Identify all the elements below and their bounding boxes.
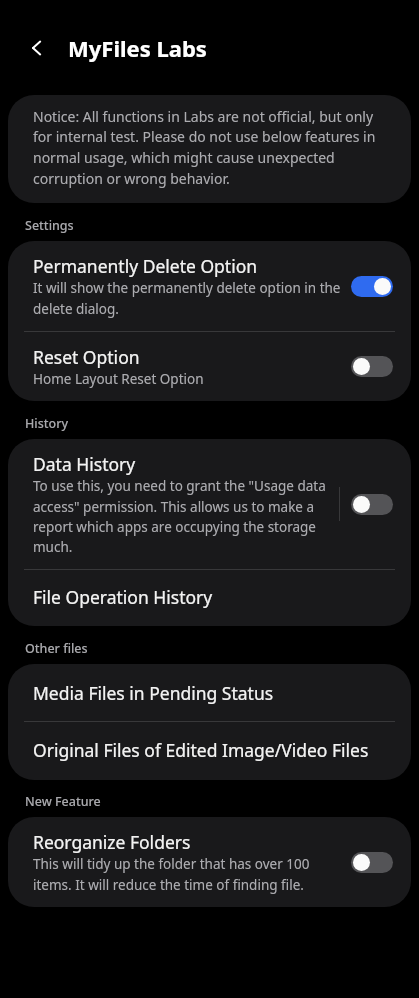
button[interactable]: Reset Option: [349, 354, 395, 379]
staticText: Home Layout Reset Option: [33, 370, 341, 388]
staticText: Permanently Delete Option: [33, 254, 258, 278]
staticText: Media Files in Pending Status: [33, 681, 274, 705]
button[interactable]: Reorganize Folders: [8, 817, 411, 907]
button[interactable]: Permanently Delete Option: [8, 241, 411, 331]
staticText: It will show the permanently delete opti…: [33, 279, 341, 318]
button[interactable]: Reset Option: [8, 332, 411, 401]
button[interactable]: Permanently Delete Option: [349, 274, 395, 299]
staticText: File Operation History: [33, 585, 213, 609]
button[interactable]: Original Files of Edited Image/Video Fil…: [8, 722, 411, 780]
staticText: Notice: All functions in Labs are not of…: [33, 107, 391, 189]
staticText: Settings: [25, 217, 74, 234]
staticText: Reorganize Folders: [33, 830, 191, 854]
staticText: Other files: [25, 640, 88, 657]
staticText: To use this, you need to grant the "Usag…: [33, 477, 331, 556]
staticText: Reset Option: [33, 345, 140, 369]
button[interactable]: Reorganize Folders: [349, 850, 395, 875]
staticText: MyFiles Labs: [68, 33, 207, 63]
button[interactable]: Back: [18, 29, 56, 67]
button[interactable]: Data History: [349, 492, 395, 517]
button[interactable]: Media Files in Pending Status: [8, 664, 411, 721]
staticText: Original Files of Edited Image/Video Fil…: [33, 738, 369, 762]
button[interactable]: File Operation History: [8, 570, 411, 626]
staticText: Data History: [33, 452, 136, 476]
staticText: This will tidy up the folder that has ov…: [33, 855, 341, 894]
staticText: New Feature: [25, 793, 101, 810]
staticText: History: [25, 415, 69, 432]
button[interactable]: Data History: [8, 439, 411, 569]
